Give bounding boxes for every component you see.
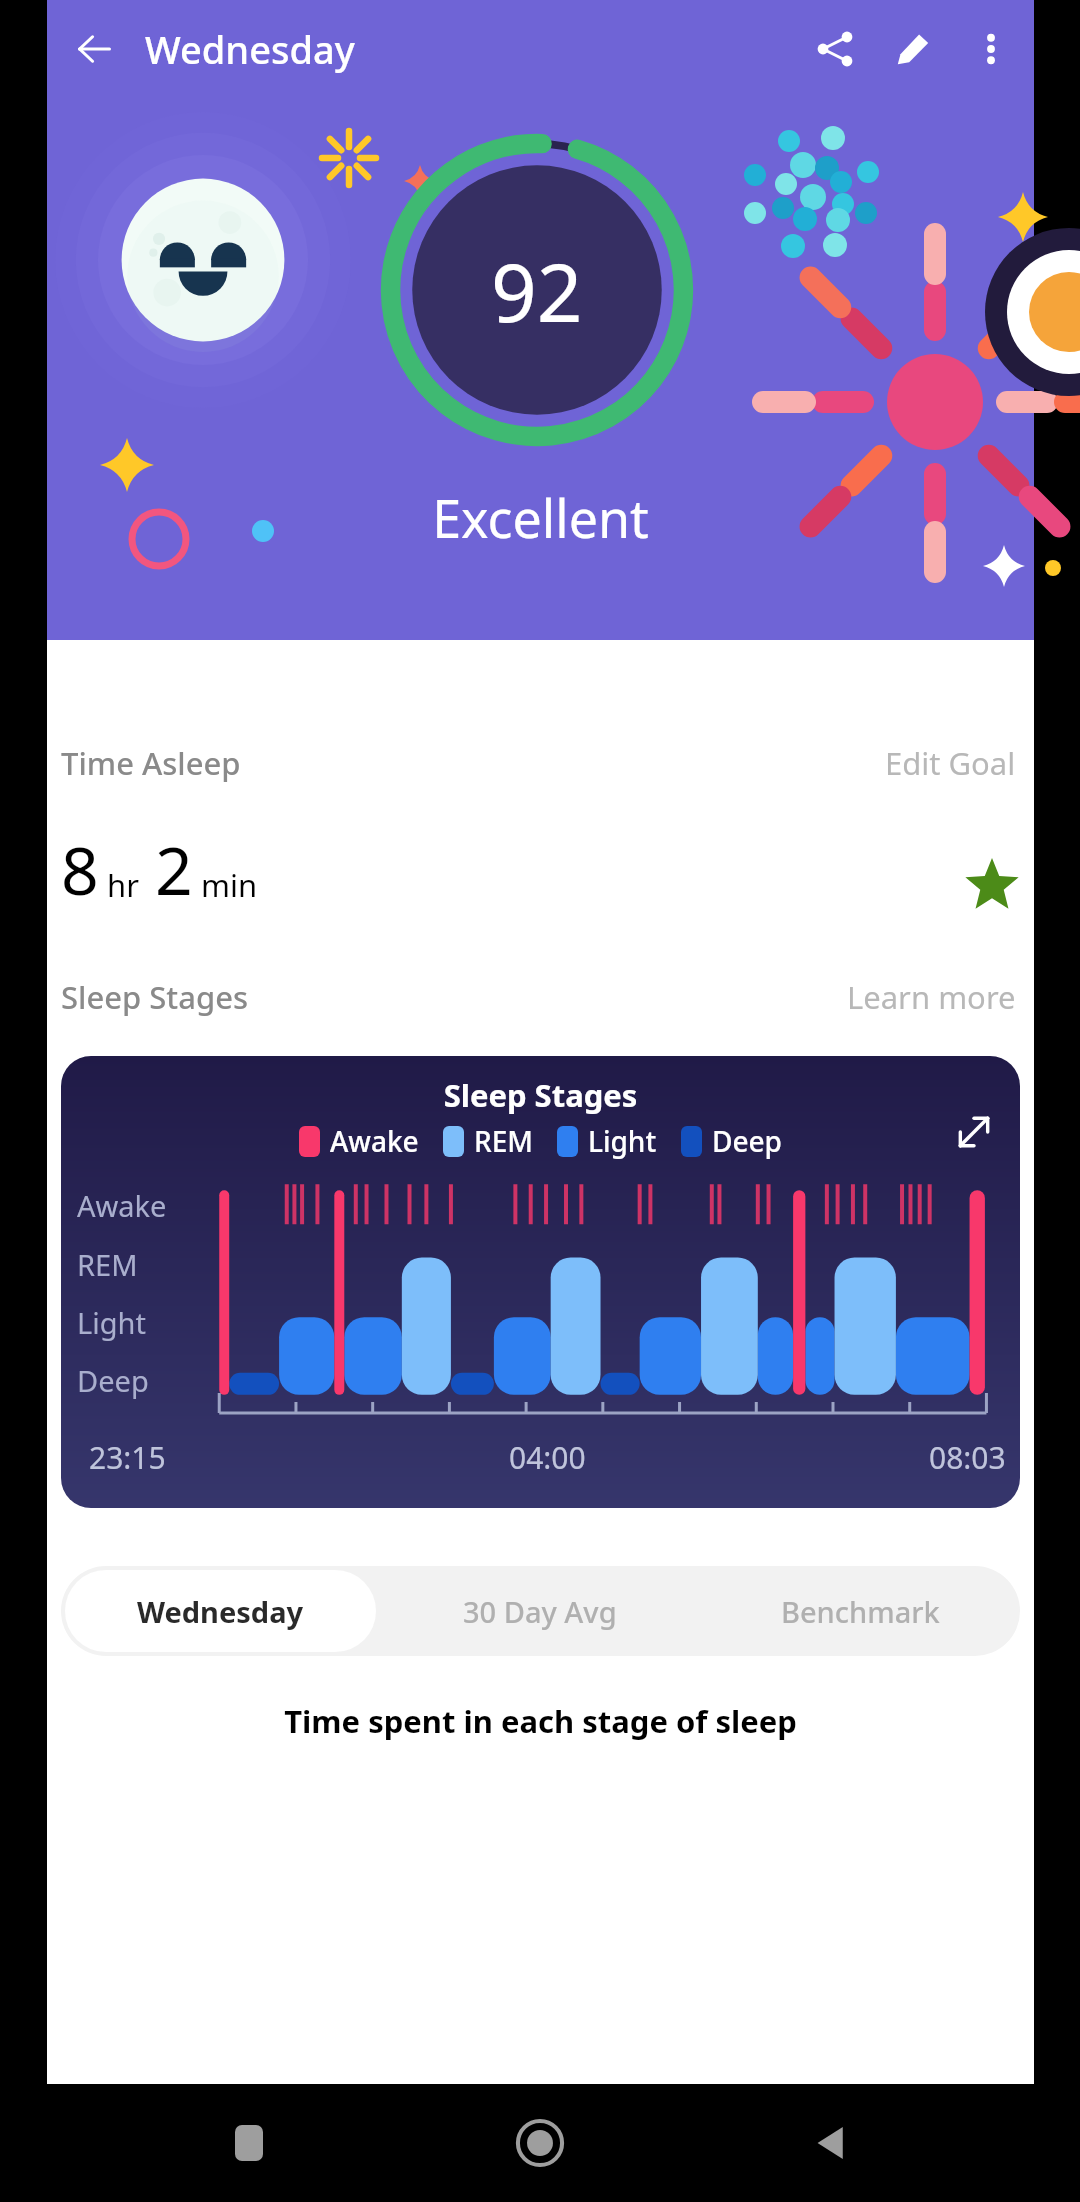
staticText: hr: [107, 864, 139, 906]
staticText: 23:15: [89, 1437, 166, 1478]
staticText: REM: [77, 1245, 138, 1284]
button[interactable]: Edit: [874, 10, 952, 88]
staticText: Light: [588, 1122, 657, 1160]
staticText: 04:00: [509, 1437, 586, 1478]
button[interactable]: Expand chart: [942, 1100, 1006, 1164]
button[interactable]: Recents: [207, 2101, 291, 2185]
staticText: Time spent in each stage of sleep: [47, 1700, 1034, 1742]
button[interactable]: Learn more: [843, 972, 1020, 1022]
staticText: Wednesday: [137, 1592, 304, 1631]
staticText: Edit Goal: [885, 742, 1016, 784]
button[interactable]: Wednesday: [65, 1570, 376, 1652]
staticText: 2: [155, 824, 193, 914]
button[interactable]: Back: [789, 2101, 873, 2185]
button[interactable]: 30 Day Avg: [380, 1566, 700, 1656]
staticText: 8: [61, 824, 99, 914]
staticText: Time Asleep: [61, 742, 241, 784]
button[interactable]: Back: [57, 12, 131, 86]
staticText: Deep: [77, 1361, 149, 1400]
staticText: Learn more: [847, 976, 1016, 1018]
staticText: Sleep Stages: [61, 1074, 1020, 1116]
staticText: min: [201, 864, 258, 906]
staticText: Sleep Stages: [61, 976, 249, 1018]
button[interactable]: Home: [498, 2101, 582, 2185]
staticText: Benchmark: [781, 1592, 940, 1631]
button[interactable]: More options: [952, 10, 1030, 88]
staticText: Awake: [330, 1122, 419, 1160]
button[interactable]: Benchmark: [700, 1566, 1020, 1656]
staticText: 08:03: [929, 1437, 1006, 1478]
staticText: Wednesday: [145, 23, 355, 75]
button[interactable]: Share: [796, 10, 874, 88]
staticText: Excellent: [47, 482, 1034, 553]
button[interactable]: Sleep Stages: [61, 1056, 1020, 1508]
staticText: Deep: [712, 1122, 782, 1160]
staticText: Light: [77, 1303, 146, 1342]
staticText: Awake: [77, 1186, 167, 1225]
button[interactable]: Edit Goal: [881, 738, 1020, 788]
staticText: 30 Day Avg: [463, 1592, 617, 1631]
staticText: 92: [491, 236, 583, 345]
staticText: REM: [474, 1122, 533, 1160]
